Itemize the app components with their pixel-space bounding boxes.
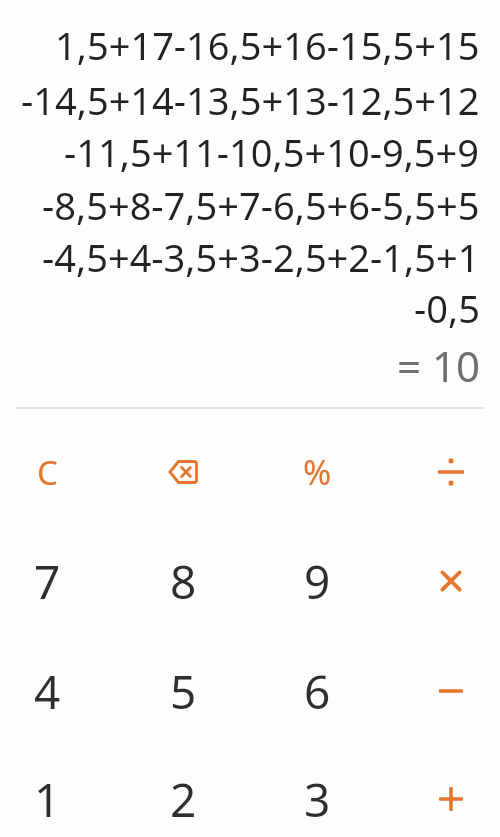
button[interactable]: 7 — [2, 536, 92, 626]
button[interactable] — [406, 754, 496, 837]
staticText: C — [37, 450, 58, 495]
staticText: -4,5+4-3,5+3-2,5+2-1,5+1 — [42, 231, 480, 283]
staticText: = 10 — [397, 337, 480, 394]
button[interactable]: 4 — [2, 646, 92, 736]
staticText: 6 — [304, 660, 331, 723]
staticText: -8,5+8-7,5+7-6,5+6-5,5+5 — [42, 179, 480, 231]
staticText: 3 — [304, 768, 331, 831]
button[interactable]: 8 — [138, 536, 228, 626]
button[interactable] — [406, 427, 496, 517]
staticText: % — [303, 449, 332, 495]
staticText: -0,5 — [414, 282, 480, 334]
staticText: 1,5+17-16,5+16-15,5+15 — [55, 19, 480, 71]
button[interactable]: 6 — [272, 646, 362, 736]
button[interactable]: 1 — [2, 754, 92, 837]
button[interactable]: 2 — [138, 754, 228, 837]
button[interactable] — [406, 536, 496, 626]
staticText: 4 — [34, 660, 61, 723]
button[interactable]: 5 — [138, 646, 228, 736]
button[interactable]: % — [272, 427, 362, 517]
staticText: 7 — [34, 550, 61, 613]
staticText: -11,5+11-10,5+10-9,5+9 — [64, 126, 480, 178]
button[interactable] — [406, 646, 496, 736]
button[interactable]: 3 — [272, 754, 362, 837]
staticText: -14,5+14-13,5+13-12,5+12 — [21, 74, 480, 126]
staticText: 1 — [34, 768, 61, 831]
button[interactable]: C — [2, 427, 92, 517]
staticText: 8 — [170, 550, 197, 613]
staticText: 9 — [304, 550, 331, 613]
button[interactable] — [138, 427, 228, 517]
staticText: 2 — [170, 768, 197, 831]
button[interactable]: 9 — [272, 536, 362, 626]
staticText: 5 — [170, 660, 197, 723]
